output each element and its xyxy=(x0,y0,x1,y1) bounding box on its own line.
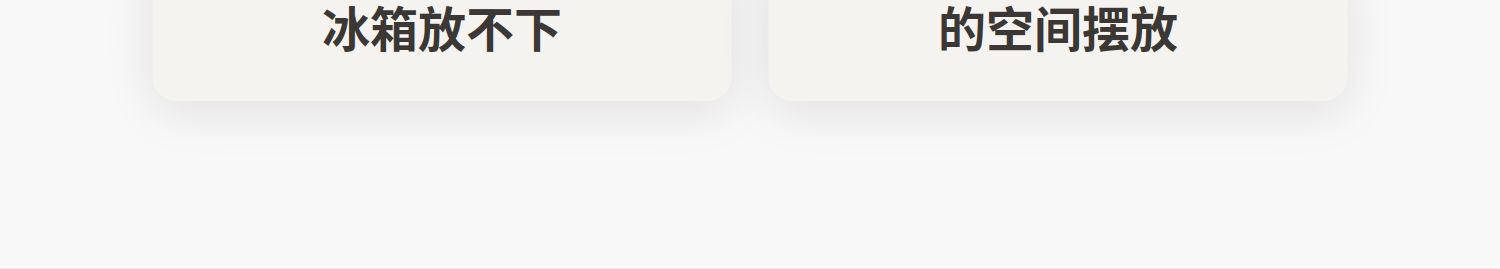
staticText: 的空间摆放 xyxy=(938,0,1178,61)
button[interactable]: 冰箱放不下 xyxy=(152,0,731,101)
button[interactable]: 的空间摆放 xyxy=(768,0,1347,101)
staticText: 冰箱放不下 xyxy=(322,0,562,61)
